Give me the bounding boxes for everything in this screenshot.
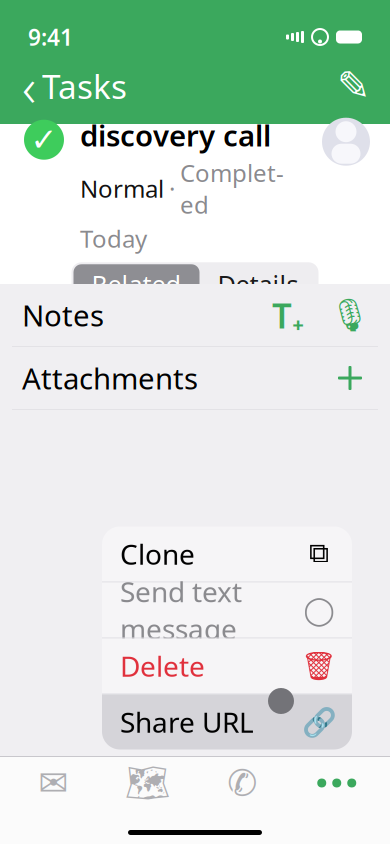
button[interactable]: Edit xyxy=(330,62,378,110)
staticText: Completed xyxy=(180,157,284,220)
staticText: Details xyxy=(217,267,298,301)
staticText: ✓ xyxy=(30,122,57,158)
staticText: ✎ xyxy=(337,63,371,109)
button[interactable]: Add voice note xyxy=(332,297,368,333)
button[interactable]: More xyxy=(289,757,384,809)
staticText: 🎙 xyxy=(329,297,370,333)
button[interactable]: Mail xyxy=(6,757,100,809)
staticText: 🗺 xyxy=(125,762,171,803)
button[interactable]: Send text message xyxy=(102,582,352,637)
staticText: ◯ xyxy=(303,594,334,626)
staticText: discovery call xyxy=(80,116,271,155)
button[interactable]: Delete xyxy=(102,638,352,693)
staticText: Normal xyxy=(80,173,164,204)
button[interactable]: Maps xyxy=(100,757,195,809)
button[interactable]: Add attachment xyxy=(332,360,368,396)
staticText: Related xyxy=(91,267,181,301)
button[interactable]: Clone xyxy=(102,526,352,581)
staticText: Tasks xyxy=(42,64,127,108)
staticText: ‹ xyxy=(22,51,36,121)
button[interactable]: Add text note xyxy=(270,297,306,333)
staticText: ✆ xyxy=(227,763,257,803)
staticText: Share URL xyxy=(120,703,254,741)
button[interactable]: Assigned contact xyxy=(320,116,372,168)
button[interactable]: Phone xyxy=(195,757,289,809)
button[interactable]: Details xyxy=(199,264,316,304)
staticText: ⧉ xyxy=(309,540,329,568)
button[interactable]: Completed xyxy=(20,116,68,164)
staticText: Clone xyxy=(120,535,195,573)
button[interactable]: ‹ xyxy=(12,62,137,110)
staticText: 9:41 xyxy=(28,22,73,52)
button[interactable]: Related xyxy=(73,264,199,304)
staticText: Send text message xyxy=(120,573,242,647)
staticText: Delete xyxy=(120,647,205,685)
staticText: T₊ xyxy=(272,292,304,338)
staticText: 🔗 xyxy=(301,706,336,738)
staticText: Attachments xyxy=(22,358,198,397)
staticText: 🗑 xyxy=(301,650,337,682)
staticText: Today xyxy=(80,222,147,254)
staticText: Notes xyxy=(22,295,104,334)
staticText: · xyxy=(169,173,175,204)
staticText: ✉ xyxy=(38,763,68,803)
button[interactable]: Share URL xyxy=(102,694,352,749)
